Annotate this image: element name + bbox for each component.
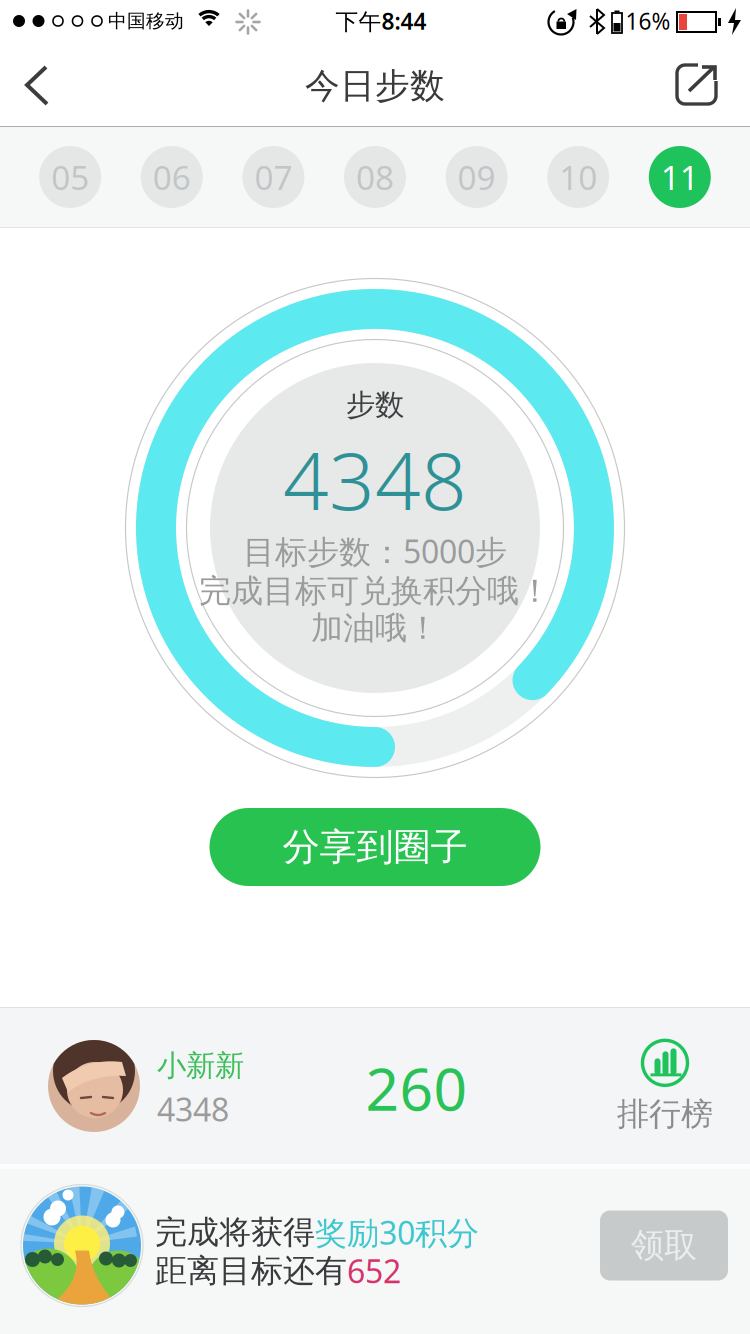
staticText: 07 [254, 155, 292, 199]
button[interactable]: 分享到圈子 [209, 808, 540, 886]
staticText: 11 [661, 155, 699, 199]
button[interactable]: Back [0, 44, 76, 126]
staticText: 08 [356, 155, 394, 199]
staticText: 4348 [283, 426, 467, 532]
button[interactable]: 08 [344, 146, 406, 208]
button[interactable]: 11 [649, 146, 711, 208]
staticText: 领取 [631, 1225, 697, 1266]
staticText: 完成目标可兑换积分哦！ [199, 571, 551, 611]
staticText: 05 [51, 155, 89, 199]
button[interactable]: Share [668, 52, 728, 118]
button[interactable]: 05 [39, 146, 101, 208]
staticText: 小新新 [157, 1048, 244, 1084]
staticText: 16% [625, 6, 670, 36]
staticText: 652 [347, 1249, 401, 1292]
staticText: 排行榜 [617, 1094, 713, 1134]
staticText: 步数 [346, 387, 404, 423]
staticText: 4348 [157, 1088, 229, 1130]
staticText: 06 [153, 155, 191, 199]
button[interactable]: 07 [242, 146, 304, 208]
staticText: 10 [559, 155, 597, 199]
staticText: 完成将获得 [155, 1213, 315, 1252]
staticText: 下午8:44 [335, 6, 426, 36]
staticText: 目标步数：5000步 [243, 530, 507, 572]
staticText: 260 [365, 1049, 467, 1127]
button[interactable]: 09 [446, 146, 508, 208]
staticText: 中国移动 [108, 9, 184, 32]
staticText: 09 [458, 155, 496, 199]
button[interactable]: 领取 [600, 1210, 728, 1280]
staticText: 加油哦！ [311, 608, 439, 648]
button[interactable]: 06 [141, 146, 203, 208]
staticText: 奖励30积分 [315, 1211, 479, 1253]
staticText: 今日步数 [305, 65, 445, 107]
button[interactable]: 10 [547, 146, 609, 208]
staticText: 距离目标还有 [155, 1251, 347, 1290]
staticText: 分享到圈子 [282, 824, 467, 870]
button[interactable]: 排行榜 [617, 1038, 750, 1134]
